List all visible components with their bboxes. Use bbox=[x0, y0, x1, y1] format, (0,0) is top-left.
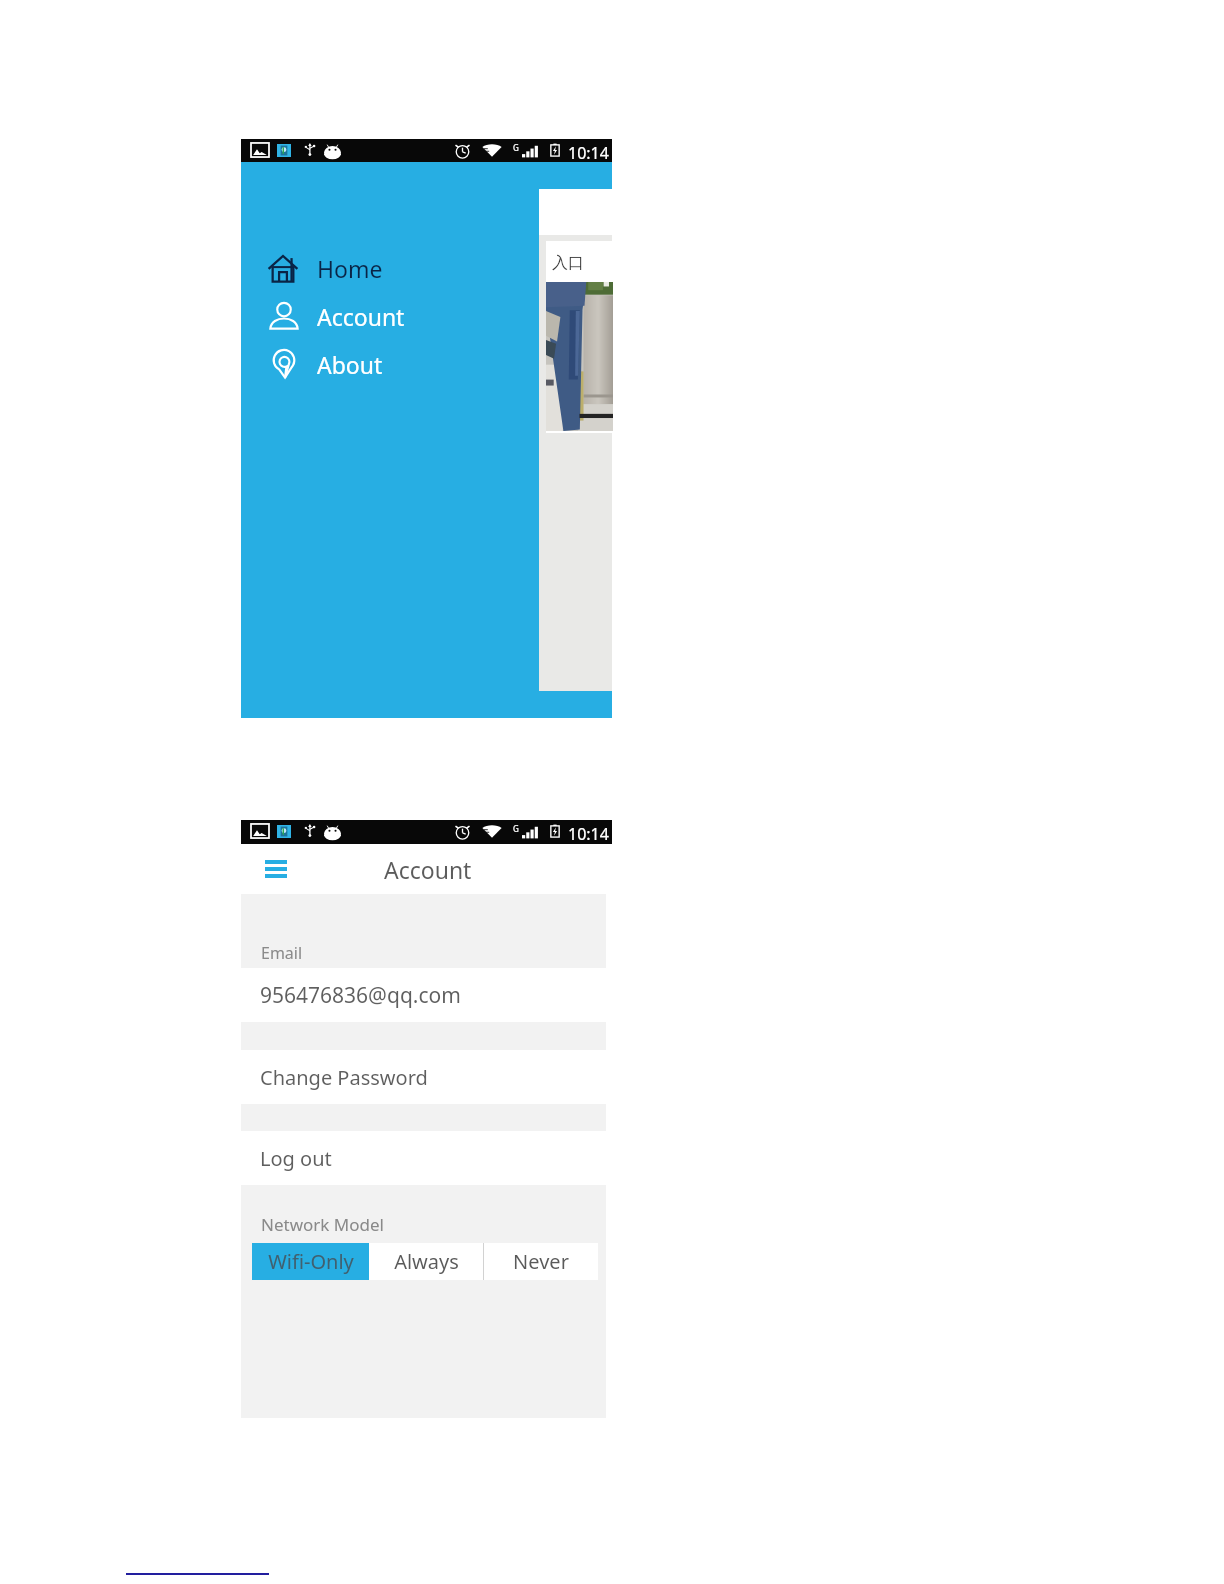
staticText: Always bbox=[394, 1248, 459, 1275]
staticText: Account bbox=[384, 854, 472, 885]
staticText: G bbox=[513, 142, 519, 153]
staticText: Network Model bbox=[261, 1213, 384, 1236]
staticText: 956476836@qq.com bbox=[260, 981, 461, 1010]
staticText: About bbox=[317, 349, 383, 379]
staticText: Wifi-Only bbox=[268, 1248, 354, 1275]
staticText: 10:14 bbox=[568, 823, 609, 845]
button[interactable]: Log out bbox=[241, 1131, 612, 1185]
staticText: Home bbox=[317, 253, 383, 283]
button[interactable]: Home bbox=[268, 253, 418, 283]
staticText: Never bbox=[513, 1248, 569, 1275]
button[interactable]: Open navigation drawer bbox=[259, 852, 293, 886]
staticText: G bbox=[513, 823, 519, 834]
button[interactable]: Never bbox=[484, 1243, 598, 1280]
staticText: Change Password bbox=[260, 1064, 428, 1091]
button[interactable]: Wifi-Only bbox=[252, 1243, 369, 1280]
button[interactable]: Change Password bbox=[241, 1050, 612, 1104]
staticText: Log out bbox=[260, 1145, 332, 1172]
button[interactable]: About bbox=[268, 349, 418, 379]
staticText: Email bbox=[261, 942, 303, 964]
button[interactable]: 956476836@qq.com bbox=[241, 968, 612, 1022]
staticText: 入口 bbox=[552, 253, 584, 273]
staticText: Account bbox=[317, 301, 405, 331]
button[interactable]: Always bbox=[369, 1243, 483, 1280]
staticText: 10:14 bbox=[568, 142, 609, 164]
button[interactable]: Account bbox=[268, 301, 418, 331]
